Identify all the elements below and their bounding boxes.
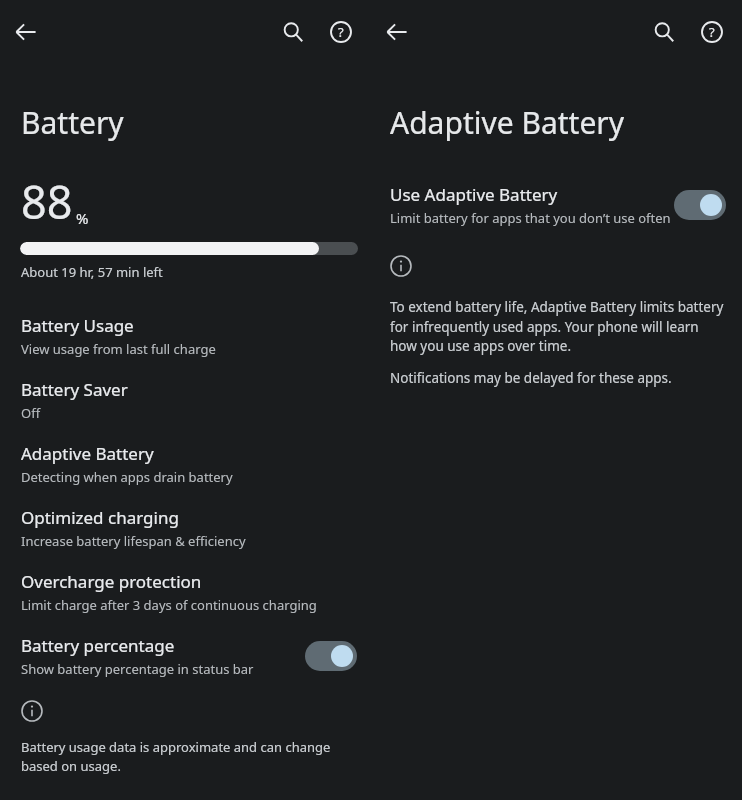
button[interactable]: Use Adaptive Battery	[371, 183, 742, 227]
button[interactable]: Toggle	[674, 190, 726, 220]
staticText: Battery Saver	[21, 378, 128, 401]
button[interactable]: Toggle	[305, 641, 357, 671]
staticText: Limit battery for apps that you don’t us…	[390, 209, 671, 227]
staticText: Show battery percentage in status bar	[21, 660, 254, 678]
staticText: Battery Usage	[21, 314, 134, 337]
staticText: To extend battery life, Adaptive Battery…	[390, 298, 726, 355]
staticText: Use Adaptive Battery	[390, 183, 558, 206]
staticText: About 19 hr, 57 min left	[21, 263, 163, 281]
button[interactable]: Overcharge protection	[0, 560, 371, 624]
button[interactable]: Adaptive Battery	[0, 432, 371, 496]
staticText: Adaptive Battery	[21, 442, 154, 465]
staticText: View usage from last full charge	[21, 340, 216, 358]
staticText: Battery percentage	[21, 634, 175, 657]
staticText: Battery	[21, 102, 124, 143]
button[interactable]: Back	[373, 8, 421, 56]
button[interactable]: Optimized charging	[0, 496, 371, 560]
staticText: 88	[21, 171, 73, 232]
button[interactable]: Help	[317, 8, 365, 56]
button[interactable]: Search	[640, 8, 688, 56]
button[interactable]: Battery Usage	[0, 304, 371, 368]
staticText: Overcharge protection	[21, 570, 202, 593]
staticText: Limit charge after 3 days of continuous …	[21, 596, 317, 614]
staticText: Off	[21, 404, 41, 422]
button[interactable]: Search	[269, 8, 317, 56]
staticText: ?	[338, 23, 344, 41]
staticText: Adaptive Battery	[390, 102, 625, 143]
staticText: %	[76, 208, 89, 228]
button[interactable]: Back	[2, 8, 50, 56]
button[interactable]: Battery Saver	[0, 368, 371, 432]
staticText: Detecting when apps drain battery	[21, 468, 233, 486]
staticText: Notifications may be delayed for these a…	[390, 369, 672, 387]
button[interactable]: Help	[688, 8, 736, 56]
button[interactable]: Battery percentage	[0, 624, 371, 688]
staticText: Optimized charging	[21, 506, 179, 529]
staticText: Battery usage data is approximate and ca…	[21, 738, 335, 775]
staticText: ?	[709, 23, 715, 41]
staticText: Increase battery lifespan & efficiency	[21, 532, 246, 550]
